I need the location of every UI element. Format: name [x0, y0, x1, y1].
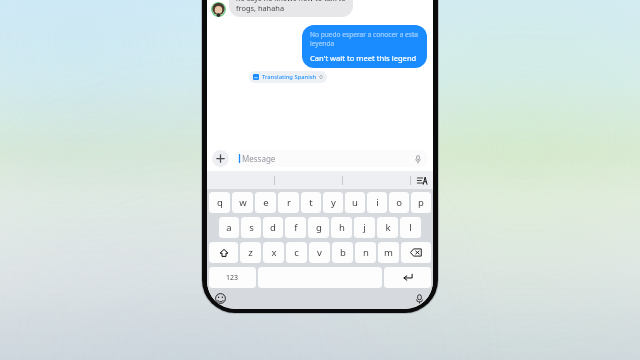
- button[interactable]: i: [367, 192, 387, 213]
- staticText: e: [263, 196, 269, 209]
- button[interactable]: k: [377, 217, 398, 238]
- button[interactable]: c: [286, 242, 307, 263]
- staticText: j: [363, 221, 366, 234]
- button[interactable]: z: [240, 242, 261, 263]
- staticText: i: [376, 196, 379, 209]
- button[interactable]: g: [308, 217, 329, 238]
- staticText: g: [316, 221, 322, 234]
- staticText: n: [363, 246, 369, 259]
- staticText: s: [249, 221, 254, 234]
- staticText: w: [239, 196, 247, 209]
- button[interactable]: q: [209, 192, 230, 213]
- staticText: b: [340, 246, 346, 259]
- button[interactable]: n: [355, 242, 376, 263]
- button[interactable]: Add attachment: [212, 150, 229, 167]
- staticText: v: [317, 246, 322, 259]
- button[interactable]: y: [323, 192, 343, 213]
- button[interactable]: f: [285, 217, 306, 238]
- staticText: Message: [242, 153, 276, 164]
- button[interactable]: w: [232, 192, 253, 213]
- button[interactable]: b: [332, 242, 353, 263]
- staticText: o: [396, 196, 402, 209]
- staticText: No puedo esperar a conocer a esta leyend…: [310, 30, 419, 48]
- button[interactable]: j: [354, 217, 375, 238]
- button[interactable]: Text formatting: [411, 176, 433, 185]
- button[interactable]: Message: [234, 150, 428, 167]
- staticText: m: [384, 246, 393, 259]
- button[interactable]: No puedo esperar a conocer a esta leyend…: [302, 25, 427, 68]
- button[interactable]: r: [278, 192, 299, 213]
- button[interactable]: o: [389, 192, 409, 213]
- button[interactable]: 123: [209, 267, 256, 288]
- staticText: l: [409, 221, 412, 234]
- staticText: u: [352, 196, 358, 209]
- button[interactable]: s: [241, 217, 261, 238]
- staticText: he says he knows how to talk to frogs, h…: [236, 0, 346, 13]
- button[interactable]: d: [263, 217, 283, 238]
- staticText: a: [226, 221, 232, 234]
- staticText: p: [418, 196, 424, 209]
- staticText: t: [309, 196, 313, 209]
- staticText: q: [217, 196, 223, 209]
- button[interactable]: m: [378, 242, 399, 263]
- button[interactable]: Dictate: [413, 154, 423, 164]
- button[interactable]: Translating Spanish: [249, 71, 327, 83]
- button[interactable]: a: [219, 217, 239, 238]
- button[interactable]: Backspace: [401, 242, 431, 263]
- staticText: Translating Spanish: [262, 73, 317, 81]
- staticText: r: [287, 196, 291, 209]
- button[interactable]: e: [255, 192, 276, 213]
- button[interactable]: Shift: [209, 242, 238, 263]
- staticText: y: [331, 196, 336, 209]
- button[interactable]: v: [309, 242, 330, 263]
- button[interactable]: Voice input: [414, 293, 425, 304]
- button[interactable]: l: [400, 217, 421, 238]
- staticText: k: [385, 221, 391, 234]
- button[interactable]: t: [301, 192, 321, 213]
- staticText: c: [294, 246, 299, 259]
- staticText: f: [294, 221, 298, 234]
- button[interactable]: p: [411, 192, 431, 213]
- staticText: h: [339, 221, 345, 234]
- staticText: 123: [226, 273, 239, 283]
- staticText: x: [271, 246, 277, 259]
- button[interactable]: Return: [384, 267, 431, 288]
- button[interactable]: [211, 2, 226, 17]
- staticText: d: [270, 221, 276, 234]
- staticText: z: [248, 246, 253, 259]
- button[interactable]: h: [331, 217, 352, 238]
- button[interactable]: he says he knows how to talk to frogs, h…: [229, 0, 353, 17]
- staticText: Can't wait to meet this legend: [310, 53, 417, 63]
- button[interactable]: Emoji: [215, 293, 226, 304]
- button[interactable]: x: [263, 242, 284, 263]
- button[interactable]: u: [345, 192, 365, 213]
